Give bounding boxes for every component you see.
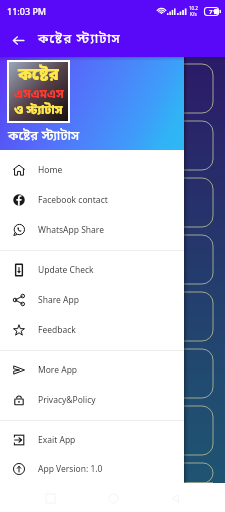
staticText: Privacy&Policy [38,394,96,406]
button[interactable]: Home [0,155,184,185]
staticText: কষ্টের স্ট্যাটাস [8,128,80,145]
staticText: 71 [209,8,216,16]
button[interactable]: Feedback [0,315,184,345]
staticText: কষ্টের [18,64,59,87]
staticText: কষ্টের স্ট্যাটাস [38,31,121,48]
staticText: এসএমএস [14,87,64,103]
staticText: Exait App [38,434,76,446]
button[interactable]: Exait App [0,425,184,455]
staticText: Facebook contact [38,194,108,206]
button[interactable]: More App [0,355,184,385]
staticText: More App [38,364,78,376]
button[interactable]: Share App [0,285,184,315]
button[interactable]: Back [5,27,31,53]
staticText: WhatsApp Share [38,224,104,236]
button[interactable]: Privacy&Policy [0,385,184,415]
button[interactable]: Update Check [0,255,184,285]
button[interactable]: WhatsApp Share [0,215,184,245]
staticText: K/s [190,11,197,17]
staticText: ও স্ট্যাটাস [14,103,63,119]
staticText: Update Check [38,264,94,276]
button[interactable]: App Version: 1.0 [0,455,184,483]
staticText: Home [38,164,63,176]
staticText: Feedback [38,324,76,336]
staticText: 11:03 PM [7,5,47,17]
staticText: 10.2 [189,5,198,11]
button[interactable]: Facebook contact [0,185,184,215]
staticText: App Version: 1.0 [38,463,103,475]
staticText: Share App [38,294,79,306]
